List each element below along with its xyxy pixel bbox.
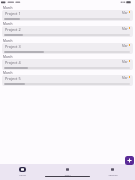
staticText: Mar [122,76,128,80]
staticText: Project 2 [5,27,21,32]
staticText: Mar [122,11,128,15]
button[interactable]: Settings [90,167,135,178]
staticText: Mar [122,60,128,64]
button[interactable]: Project 3 [2,43,133,54]
staticText: Settings [108,173,118,176]
staticText: March [3,39,13,43]
staticText: March [3,55,13,59]
staticText: Tasks [64,173,71,176]
staticText: Home [19,173,26,176]
staticText: Project 5 [5,76,21,81]
button[interactable]: Add [125,156,134,165]
button[interactable]: Home [0,167,45,178]
staticText: Mar [122,27,128,31]
staticText: Project 3 [5,44,21,49]
staticText: March [3,71,13,75]
staticText: Project 4 [5,60,21,65]
staticText: Mar [122,44,128,48]
button[interactable]: Project 2 [2,26,133,37]
button[interactable]: Tasks [45,167,90,178]
staticText: March [3,22,13,26]
button[interactable]: Project 5 [2,75,133,86]
staticText: March [3,6,13,10]
staticText: Project 1 [5,11,21,16]
button[interactable]: Project 4 [2,59,133,70]
button[interactable]: Project 1 [2,10,133,21]
